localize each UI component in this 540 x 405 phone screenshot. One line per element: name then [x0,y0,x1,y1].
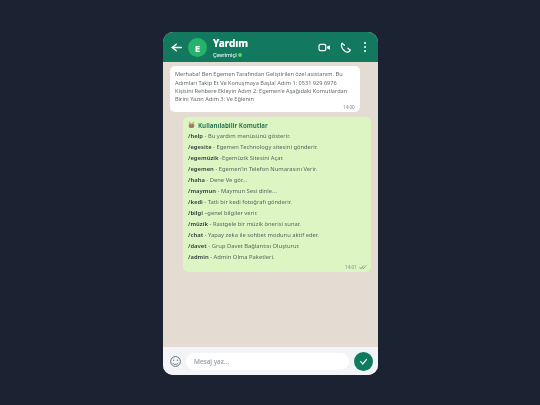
button[interactable]: More options [357,39,373,55]
button[interactable]: Merhaba! Ben Egemen Tarafından Geliştiri… [170,66,360,112]
button[interactable]: Back [168,39,184,55]
staticText: Çevrimiçi [213,51,237,58]
button[interactable]: Voice call [336,38,354,56]
staticText: E [195,42,201,54]
staticText: /egemen - Egemen'in Telefon Numarasını V… [188,165,317,173]
staticText: /admin - Admin Olma Paketleri. [188,253,275,261]
staticText: /maymun - Maymun Sesi dinle... [188,187,277,195]
staticText: /egesite - Egemen Technology sitesini gö… [188,143,318,151]
staticText: /haha - Dene Ve gör... [188,176,247,184]
button[interactable]: Emoji [168,354,182,368]
staticText: 14:00 [343,104,355,110]
staticText: 14:01 [345,264,357,270]
staticText: /egemüzik -Egemüzik Sitesini Açar. [188,154,284,162]
staticText: Mesaj yaz... [194,357,229,366]
staticText: Yardım [213,36,249,50]
button[interactable]: Yardım [213,36,315,58]
staticText: /müzik - Rastgele bir müzik önerisi suna… [188,220,301,228]
staticText: Merhaba! Ben Egemen Tarafından Geliştiri… [175,70,355,102]
staticText: /kedi - Tatlı bir kedi fotoğrafı gönderi… [188,198,292,206]
button[interactable]: E [188,38,207,57]
button[interactable]: Video call [315,38,333,56]
staticText: /davet - Grup Davet Bağlantısı Oluşturur… [188,242,300,250]
staticText: /bilgi –genel bilgiler verir. [188,209,258,217]
staticText: /chat - Yapay zeka ile sohbet modunu akt… [188,231,319,239]
staticText: /help - Bu yardım menüsünü gösterir. [188,132,291,140]
button[interactable]: Kullanılabilir Komutlar [183,117,371,272]
button[interactable]: Mesaj yaz... [186,353,349,370]
staticText: Kullanılabilir Komutlar [198,121,268,129]
button[interactable]: Send [354,352,373,371]
